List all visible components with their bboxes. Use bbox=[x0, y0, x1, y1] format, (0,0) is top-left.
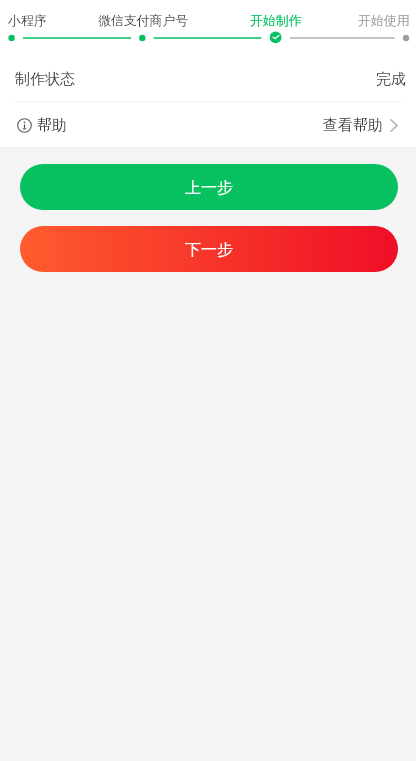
staticText: 完成 bbox=[376, 70, 406, 89]
staticText: 开始使用 bbox=[358, 13, 410, 29]
staticText: 帮助 bbox=[37, 116, 67, 135]
button[interactable]: 帮助说明 bbox=[0, 102, 416, 148]
button[interactable]: 下一步 bbox=[20, 226, 398, 272]
button[interactable]: 上一步 bbox=[20, 164, 398, 210]
staticText: 开始制作 bbox=[250, 13, 302, 29]
staticText: 制作状态 bbox=[15, 70, 75, 89]
staticText: 上一步 bbox=[185, 178, 233, 198]
other: 帮助说明 bbox=[17, 118, 32, 133]
button[interactable]: 开始制作 bbox=[250, 13, 302, 29]
staticText: 微信支付商户号 bbox=[98, 13, 189, 29]
button[interactable]: 开始使用 bbox=[358, 13, 410, 29]
button[interactable]: 小程序 bbox=[8, 13, 47, 29]
staticText: 小程序 bbox=[8, 13, 47, 29]
button[interactable]: 微信支付商户号 bbox=[98, 13, 189, 29]
staticText: 下一步 bbox=[185, 240, 233, 260]
staticText: 查看帮助 bbox=[323, 116, 383, 135]
button[interactable]: 制作状态 bbox=[0, 56, 416, 102]
